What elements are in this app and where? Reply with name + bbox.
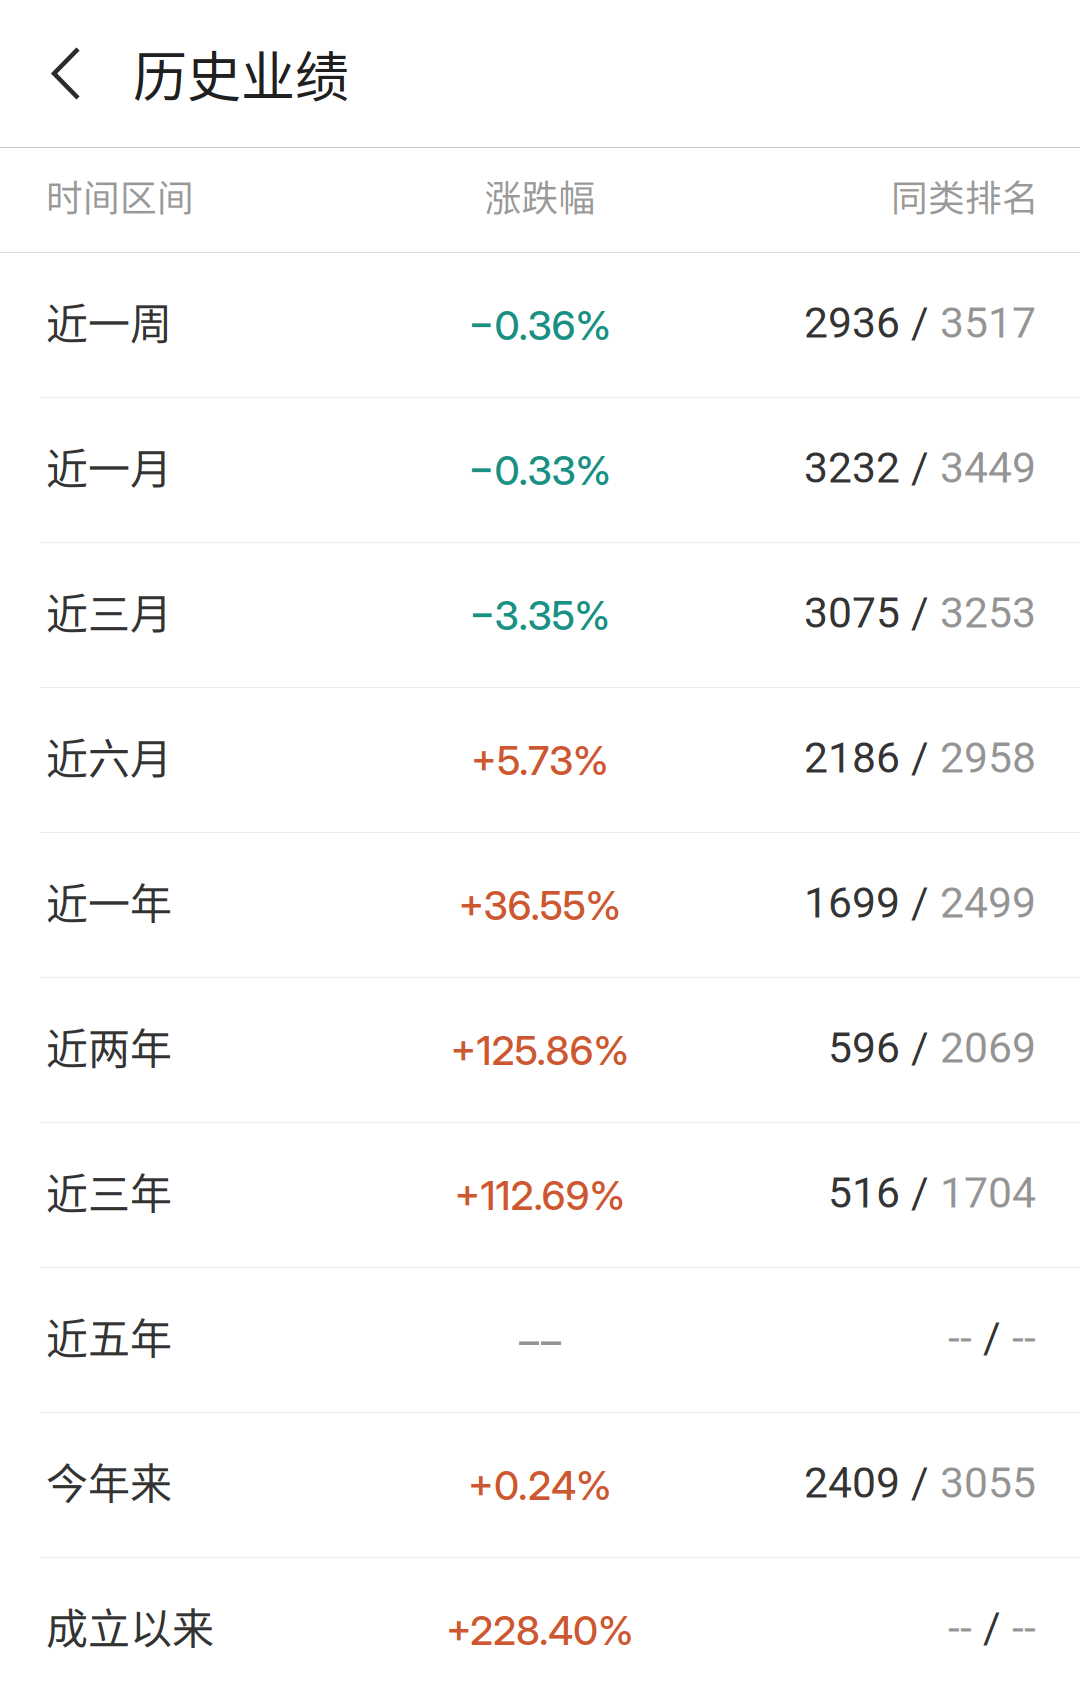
staticText: – – [519, 1316, 561, 1365]
staticText: 近三年 [46, 1161, 172, 1221]
staticText: +0.24% [468, 1461, 612, 1510]
staticText: +112.69% [454, 1171, 625, 1220]
staticText: 近一月 [46, 436, 172, 496]
staticText: 2936 [804, 298, 900, 348]
staticText: 2499 [940, 878, 1036, 928]
staticText: / [900, 1458, 940, 1508]
staticText: / [900, 588, 940, 638]
staticText: 同类排名 [891, 169, 1039, 222]
staticText: 时间区间 [46, 169, 194, 222]
staticText: -- [1012, 1313, 1036, 1363]
staticText: 近一年 [46, 871, 172, 931]
staticText: 近两年 [46, 1016, 172, 1076]
staticText: 3232 [804, 443, 900, 493]
staticText: 今年来 [46, 1451, 172, 1511]
staticText: / [900, 298, 940, 348]
staticText: 3055 [940, 1458, 1036, 1508]
staticText: / [972, 1313, 1012, 1363]
staticText: −0.33% [468, 446, 611, 495]
staticText: 2409 [804, 1458, 900, 1508]
staticText: +5.73% [471, 736, 609, 785]
staticText: -- [948, 1313, 972, 1363]
staticText: −3.35% [469, 591, 610, 640]
staticText: −0.36% [468, 301, 611, 350]
staticText: 3449 [940, 443, 1036, 493]
staticText: 3253 [940, 588, 1036, 638]
staticText: 3517 [940, 298, 1036, 348]
staticText: 近六月 [46, 726, 172, 786]
staticText: 近三月 [46, 581, 172, 641]
staticText: / [972, 1603, 1012, 1653]
staticText: 2069 [940, 1023, 1036, 1073]
staticText: / [900, 1023, 940, 1073]
staticText: 596 [828, 1023, 900, 1073]
staticText: -- [1012, 1603, 1036, 1653]
staticText: -- [948, 1603, 972, 1653]
staticText: 1704 [940, 1168, 1036, 1218]
staticText: / [900, 1168, 940, 1218]
button[interactable]: 返回 [0, 0, 133, 147]
staticText: 1699 [804, 878, 900, 928]
staticText: 2958 [940, 733, 1036, 783]
staticText: 历史业绩 [133, 34, 349, 113]
staticText: / [900, 878, 940, 928]
staticText: 3075 [804, 588, 900, 638]
staticText: 2186 [804, 733, 900, 783]
staticText: 近五年 [46, 1306, 172, 1366]
staticText: +228.40% [446, 1606, 634, 1655]
staticText: 近一周 [46, 291, 172, 351]
staticText: / [900, 733, 940, 783]
staticText: 成立以来 [46, 1596, 214, 1656]
staticText: +36.55% [458, 881, 621, 930]
staticText: / [900, 443, 940, 493]
staticText: 516 [828, 1168, 900, 1218]
staticText: +125.86% [450, 1026, 629, 1075]
staticText: 涨跌幅 [484, 169, 595, 222]
